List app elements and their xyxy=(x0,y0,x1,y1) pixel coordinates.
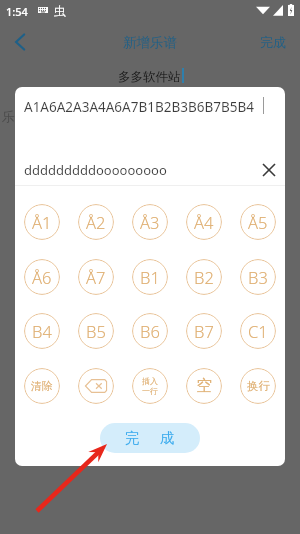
button[interactable]: 插入一行 xyxy=(132,368,168,404)
staticText: A1A6A2A3A4A6A7B1B2B3B6B7B5B4 xyxy=(24,98,254,116)
button[interactable]: B4 xyxy=(24,313,60,349)
staticText: C1 xyxy=(248,320,268,342)
button[interactable]: 换行 xyxy=(240,368,276,404)
button[interactable]: 清除 xyxy=(24,368,60,404)
staticText: 换行 xyxy=(247,379,270,393)
staticText: Å5 xyxy=(248,211,268,233)
staticText: 完成 xyxy=(260,34,286,50)
button[interactable]: Å3 xyxy=(132,204,168,240)
button[interactable]: B2 xyxy=(186,259,222,295)
staticText: B5 xyxy=(86,320,106,342)
button[interactable]: B5 xyxy=(78,313,114,349)
staticText: Å7 xyxy=(86,266,106,288)
button[interactable]: C1 xyxy=(240,313,276,349)
staticText: B1 xyxy=(140,266,160,288)
button[interactable]: B3 xyxy=(240,259,276,295)
button[interactable]: Å2 xyxy=(78,204,114,240)
button[interactable]: Back xyxy=(7,29,33,55)
button[interactable]: Å7 xyxy=(78,259,114,295)
staticText: dddddddddooooooooo xyxy=(24,161,167,179)
staticText: Å3 xyxy=(140,211,160,233)
staticText: 清除 xyxy=(31,379,53,393)
staticText: 成 xyxy=(160,429,175,447)
staticText: 1:54 xyxy=(6,4,28,19)
staticText: Å4 xyxy=(194,211,214,233)
button[interactable]: Å5 xyxy=(240,204,276,240)
button[interactable]: Å4 xyxy=(186,204,222,240)
button[interactable]: Backspace xyxy=(78,368,114,404)
staticText: B4 xyxy=(32,320,52,342)
button[interactable]: 空 xyxy=(186,368,222,404)
staticText: Å6 xyxy=(32,266,52,288)
staticText: 插入 xyxy=(142,376,158,386)
button[interactable]: Å6 xyxy=(24,259,60,295)
staticText: 乐 xyxy=(2,108,15,124)
staticText: B3 xyxy=(248,266,268,288)
staticText: Å2 xyxy=(86,211,106,233)
staticText: 虫 xyxy=(54,3,66,18)
button[interactable]: B6 xyxy=(132,313,168,349)
staticText: B7 xyxy=(194,320,214,342)
button[interactable]: Å1 xyxy=(24,204,60,240)
staticText: 一行 xyxy=(142,386,158,396)
button[interactable]: Clear xyxy=(258,159,279,180)
staticText: 空 xyxy=(196,376,212,396)
staticText: 完 xyxy=(125,429,140,447)
button[interactable]: B1 xyxy=(132,259,168,295)
staticText: B2 xyxy=(194,266,214,288)
button[interactable]: 完 xyxy=(100,423,200,453)
staticText: Å1 xyxy=(32,211,52,233)
button[interactable]: 完成 xyxy=(246,25,300,59)
staticText: B6 xyxy=(140,320,160,342)
staticText: 多多软件站 xyxy=(118,69,181,85)
staticText: 新增乐谱 xyxy=(123,34,177,51)
button[interactable]: B7 xyxy=(186,313,222,349)
